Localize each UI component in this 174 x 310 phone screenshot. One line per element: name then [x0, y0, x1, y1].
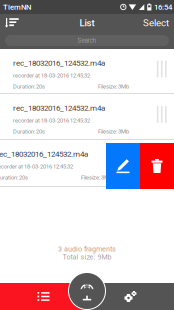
- staticText: Search: [77, 37, 96, 44]
- button[interactable]: Edit: [106, 143, 140, 189]
- staticText: List: [79, 17, 94, 29]
- staticText: Filesize: 3Mb: [98, 83, 129, 90]
- staticText: 16:54: [154, 2, 172, 12]
- staticText: Filesize: 3Mb: [98, 128, 129, 135]
- staticText: Duration: 20s: [0, 174, 28, 181]
- button[interactable]: Select: [138, 14, 174, 32]
- staticText: Total size: 9Mb: [62, 253, 111, 261]
- staticText: recorder at 18-03-2016 12:45:32: [13, 117, 90, 124]
- staticText: TiemNN: [3, 2, 31, 12]
- staticText: Duration: 20s: [13, 128, 45, 135]
- button[interactable]: Delete: [140, 143, 174, 189]
- staticText: recorder at 18-03-2016 12:45:32: [13, 72, 90, 79]
- staticText: rec_18032016_124532.m4a: [0, 149, 88, 159]
- staticText: Filesize: 3Mb: [81, 174, 112, 181]
- staticText: recorder at 18-03-2016 12:45:32: [0, 163, 73, 170]
- button[interactable]: Menu: [0, 14, 25, 32]
- button[interactable]: Recordings list: [0, 283, 87, 310]
- staticText: 3 audio fragments: [58, 245, 116, 253]
- staticText: rec_18032016_124532.m4a: [13, 58, 105, 68]
- staticText: Select: [143, 17, 169, 29]
- button[interactable]: Settings: [87, 283, 174, 310]
- staticText: Duration: 20s: [13, 83, 45, 90]
- staticText: rec_18032016_124532.m4a: [13, 103, 105, 113]
- button[interactable]: Search: [0, 35, 174, 46]
- button[interactable]: Record: [68, 272, 106, 310]
